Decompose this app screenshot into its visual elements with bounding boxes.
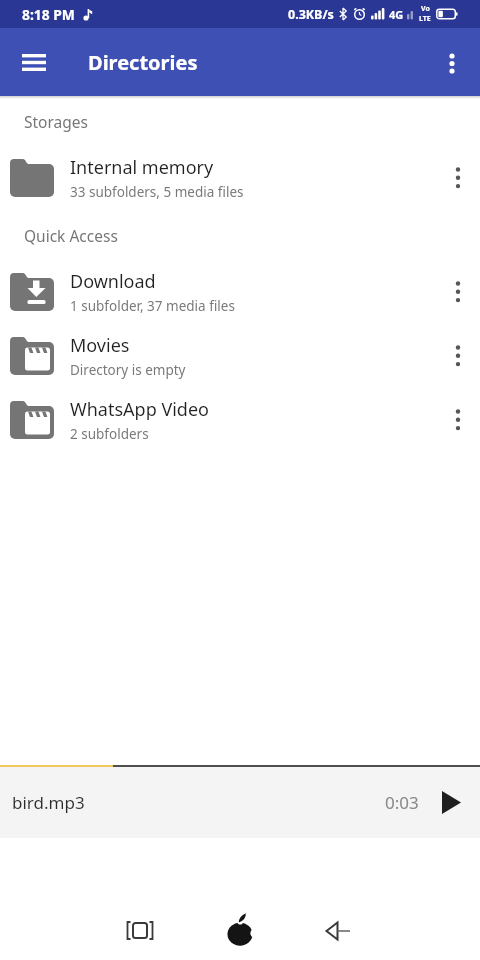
button[interactable] bbox=[438, 272, 478, 312]
button[interactable] bbox=[10, 38, 58, 86]
button[interactable] bbox=[438, 158, 478, 198]
staticText: LTE bbox=[419, 14, 431, 24]
button[interactable] bbox=[316, 907, 364, 955]
button[interactable] bbox=[428, 38, 476, 86]
button[interactable]: Internal memory bbox=[0, 146, 480, 210]
staticText: WhatsApp Video bbox=[70, 397, 209, 422]
staticText: 4G bbox=[389, 7, 404, 22]
staticText: Quick Access bbox=[24, 225, 118, 246]
staticText: Download bbox=[70, 269, 156, 294]
staticText: 0:03 bbox=[385, 791, 419, 814]
staticText: Directory is empty bbox=[70, 361, 186, 379]
staticText: 1 subfolder, 37 media files bbox=[70, 297, 235, 315]
button[interactable]: bird.mp3 bbox=[0, 767, 480, 838]
staticText: Storages bbox=[24, 111, 88, 132]
staticText: 8:18 PM bbox=[22, 5, 75, 24]
button[interactable] bbox=[432, 783, 472, 823]
button[interactable] bbox=[438, 336, 478, 376]
staticText: Internal memory bbox=[70, 155, 214, 180]
staticText: 33 subfolders, 5 media files bbox=[70, 183, 244, 201]
staticText: Vo bbox=[421, 4, 430, 14]
button[interactable] bbox=[438, 400, 478, 440]
button[interactable] bbox=[116, 907, 164, 955]
staticText: 2 subfolders bbox=[70, 425, 149, 443]
staticText: 0.3KB/s bbox=[288, 6, 334, 23]
staticText: Movies bbox=[70, 333, 130, 358]
button[interactable]: Movies bbox=[0, 324, 480, 388]
button[interactable]: Download bbox=[0, 260, 480, 324]
button[interactable]: WhatsApp Video bbox=[0, 388, 480, 452]
staticText: bird.mp3 bbox=[12, 791, 85, 814]
button[interactable] bbox=[216, 907, 264, 955]
staticText: Directories bbox=[88, 49, 198, 76]
